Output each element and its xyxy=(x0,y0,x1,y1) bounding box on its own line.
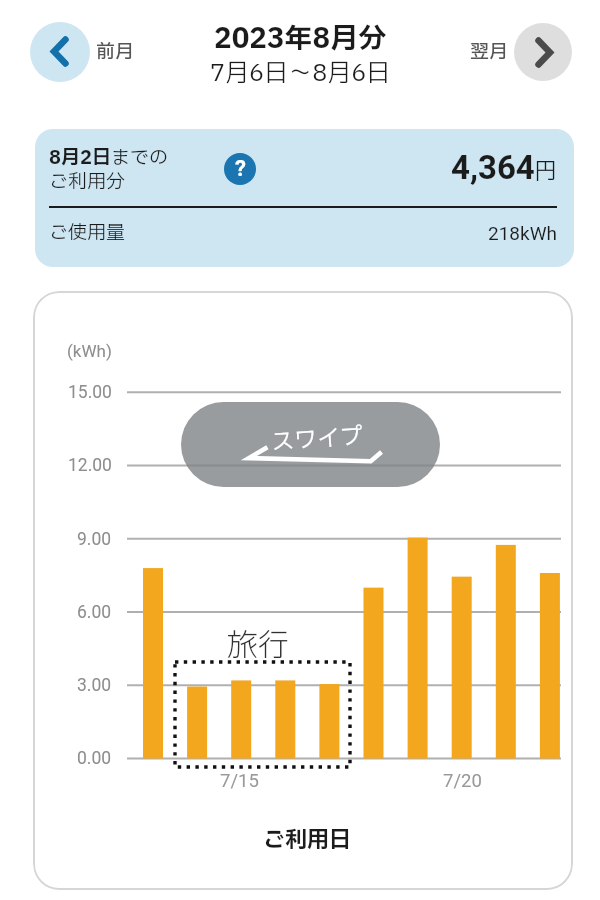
staticText: 7/15 xyxy=(220,770,259,792)
staticText: ? xyxy=(235,156,246,182)
staticText: 15.00 xyxy=(68,382,112,403)
staticText: 2023年8月分 xyxy=(214,18,387,56)
button[interactable]: ? xyxy=(224,153,256,185)
staticText: 7/20 xyxy=(443,770,482,792)
staticText: 9.00 xyxy=(77,529,112,550)
staticText: 翌月 xyxy=(470,38,509,66)
staticText: 12.00 xyxy=(68,455,112,476)
staticText: (kWh) xyxy=(67,341,112,361)
button[interactable]: 前月 xyxy=(30,22,140,82)
staticText: ご使用量 xyxy=(49,219,126,247)
staticText: 7月6日〜8月6日 xyxy=(210,56,391,88)
staticText: 3.00 xyxy=(77,675,112,696)
staticText: ご利用日 xyxy=(263,824,352,854)
staticText: スワイプ xyxy=(270,420,364,456)
staticText: 8月2日までの ご利用分 xyxy=(49,144,168,196)
staticText: 6.00 xyxy=(77,602,112,623)
staticText: 旅行 xyxy=(227,623,289,661)
staticText: 4,364円 xyxy=(451,148,557,188)
staticText: 前月 xyxy=(96,38,135,66)
staticText: 0.00 xyxy=(77,748,112,769)
staticText: 218kWh xyxy=(488,222,557,244)
button[interactable]: 翌月 xyxy=(470,22,574,82)
